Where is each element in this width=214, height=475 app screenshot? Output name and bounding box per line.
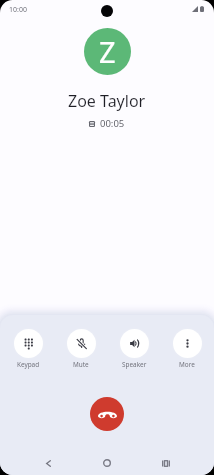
staticText: More: [179, 360, 195, 369]
staticText: Z: [99, 32, 116, 71]
button[interactable]: Keypad: [4, 325, 52, 371]
button[interactable]: Speaker: [110, 325, 158, 371]
button[interactable]: More: [163, 325, 211, 371]
staticText: 00:05: [100, 117, 125, 130]
button[interactable]: Recent apps: [156, 453, 176, 473]
staticText: Zoe Taylor: [68, 90, 146, 112]
staticText: Keypad: [17, 360, 40, 369]
staticText: 10:00: [9, 5, 27, 15]
button[interactable]: Home: [97, 453, 117, 473]
button[interactable]: Back: [38, 453, 58, 473]
button[interactable]: End call: [90, 397, 124, 431]
staticText: Speaker: [122, 360, 147, 369]
staticText: Mute: [73, 360, 89, 369]
button[interactable]: Mute: [57, 325, 105, 371]
